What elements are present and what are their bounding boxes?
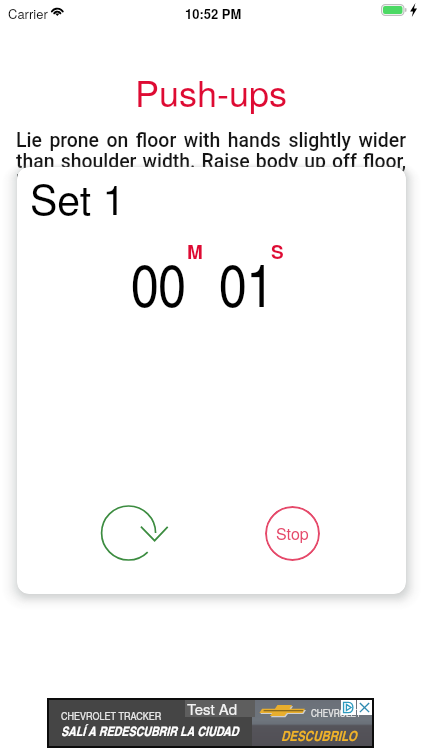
staticText: Push-ups [0,66,422,118]
staticText: Test Ad [187,698,238,719]
staticText: S [271,238,284,265]
button[interactable]: Close ad [357,700,372,715]
staticText: Set 1 [30,168,126,227]
staticText: Stop [276,522,309,545]
button[interactable]: Stop [265,506,320,561]
staticText: CHEVROLET TRACKER [61,708,162,723]
button[interactable]: Test Ad [47,698,374,748]
staticText: 01 [219,242,274,324]
staticText: Lie prone on floor with hands slightly w… [16,129,406,193]
staticText: DESCUBRILO [281,726,357,746]
staticText: CHEVROLET [311,706,362,720]
staticText: 00 [131,242,186,324]
button[interactable]: Restart timer [97,499,173,567]
staticText: Carrier [8,4,48,23]
button[interactable]: Ad info [341,700,356,715]
staticText: SALÍ A REDESCUBRIR LA CIUDAD [61,722,239,740]
staticText: 10:52 PM [185,4,242,23]
staticText: M [187,238,203,265]
